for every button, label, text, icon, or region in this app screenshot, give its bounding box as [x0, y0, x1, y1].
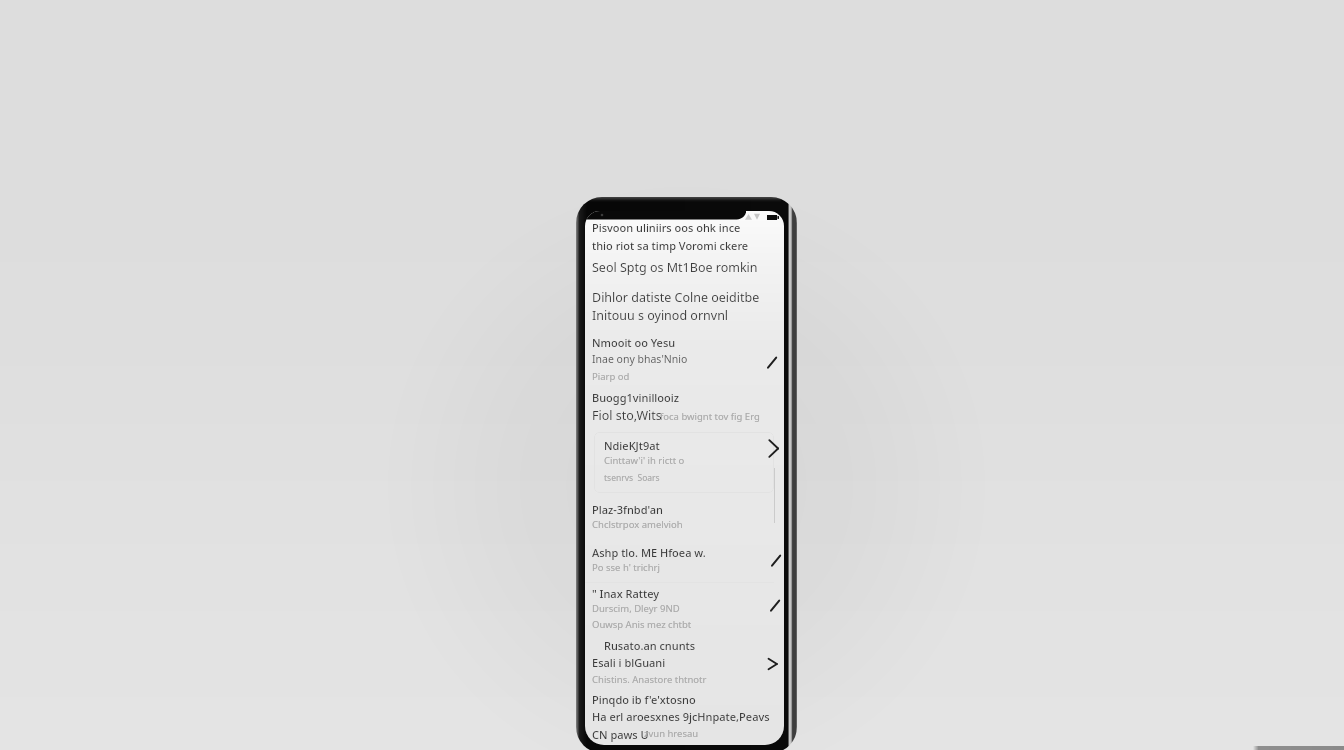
button[interactable]: NdieKJt9at [594, 432, 774, 493]
button[interactable] [585, 539, 784, 580]
button[interactable]: Po sse h' trichrj [592, 561, 660, 574]
button[interactable]: Chclstrpox amelvioh [592, 518, 683, 531]
button[interactable]: Edit [767, 356, 777, 369]
button[interactable] [585, 496, 784, 536]
button[interactable]: zvun hresau [644, 727, 699, 740]
button[interactable] [585, 386, 784, 428]
button[interactable]: Nmooit oo Yesu [592, 335, 676, 350]
button[interactable]: Buogg1vinillooiz [592, 390, 679, 405]
button[interactable] [585, 329, 784, 385]
button[interactable] [585, 255, 784, 282]
button[interactable]: thio riot sa timp Voromi ckere [592, 238, 749, 253]
button[interactable]: Initouu s oyinod ornvnl [592, 307, 729, 324]
button[interactable] [585, 214, 784, 254]
button[interactable]: Seol Sptg os Mt1Boe romkin [592, 259, 758, 276]
button[interactable]: Dihlor datiste Colne oeiditbe [592, 289, 760, 306]
staticText: NdieKJt9at [604, 438, 660, 453]
button[interactable]: Fiol sto,Wits [592, 407, 662, 424]
button[interactable]: Inae ony bhas'Nnio [592, 352, 688, 366]
button[interactable]: Edit [770, 599, 780, 612]
button[interactable]: Ouwsp Anis mez chtbt [592, 618, 692, 631]
button[interactable]: Piarp od [592, 370, 630, 383]
button[interactable]: " Inax Rattey [592, 586, 660, 601]
button[interactable] [585, 283, 784, 328]
button[interactable]: Chistins. Anastore thtnotr [592, 673, 707, 686]
staticText: Cinttaw'i' ih rictt o [604, 454, 685, 467]
button[interactable]: Rusato.an cnunts [604, 638, 696, 653]
button[interactable]: Plaz-3fnbd'an [592, 502, 663, 517]
button[interactable]: foca bwignt tov fig Erg [660, 410, 760, 423]
button[interactable] [585, 633, 784, 686]
button[interactable]: Pinqdo ib f'e'xtosno [592, 692, 696, 707]
button[interactable]: Durscim, Dleyr 9ND [592, 602, 680, 615]
button[interactable]: Ha erl aroesxnes 9jcHnpate,Peavs [592, 709, 770, 724]
button[interactable]: Edit [771, 554, 781, 567]
button[interactable]: Open [767, 658, 778, 670]
button[interactable] [585, 687, 784, 744]
button[interactable]: Pisvoon uliniirs oos ohk ince [592, 220, 741, 235]
button[interactable]: Open details [768, 439, 779, 458]
staticText: tsenrvs Soars [604, 472, 660, 484]
button[interactable] [585, 582, 784, 632]
button[interactable]: Ashp tlo. ME Hfoea w. [592, 545, 706, 560]
button[interactable]: Esali i blGuani [592, 655, 666, 670]
button[interactable]: CN paws U [592, 727, 649, 742]
